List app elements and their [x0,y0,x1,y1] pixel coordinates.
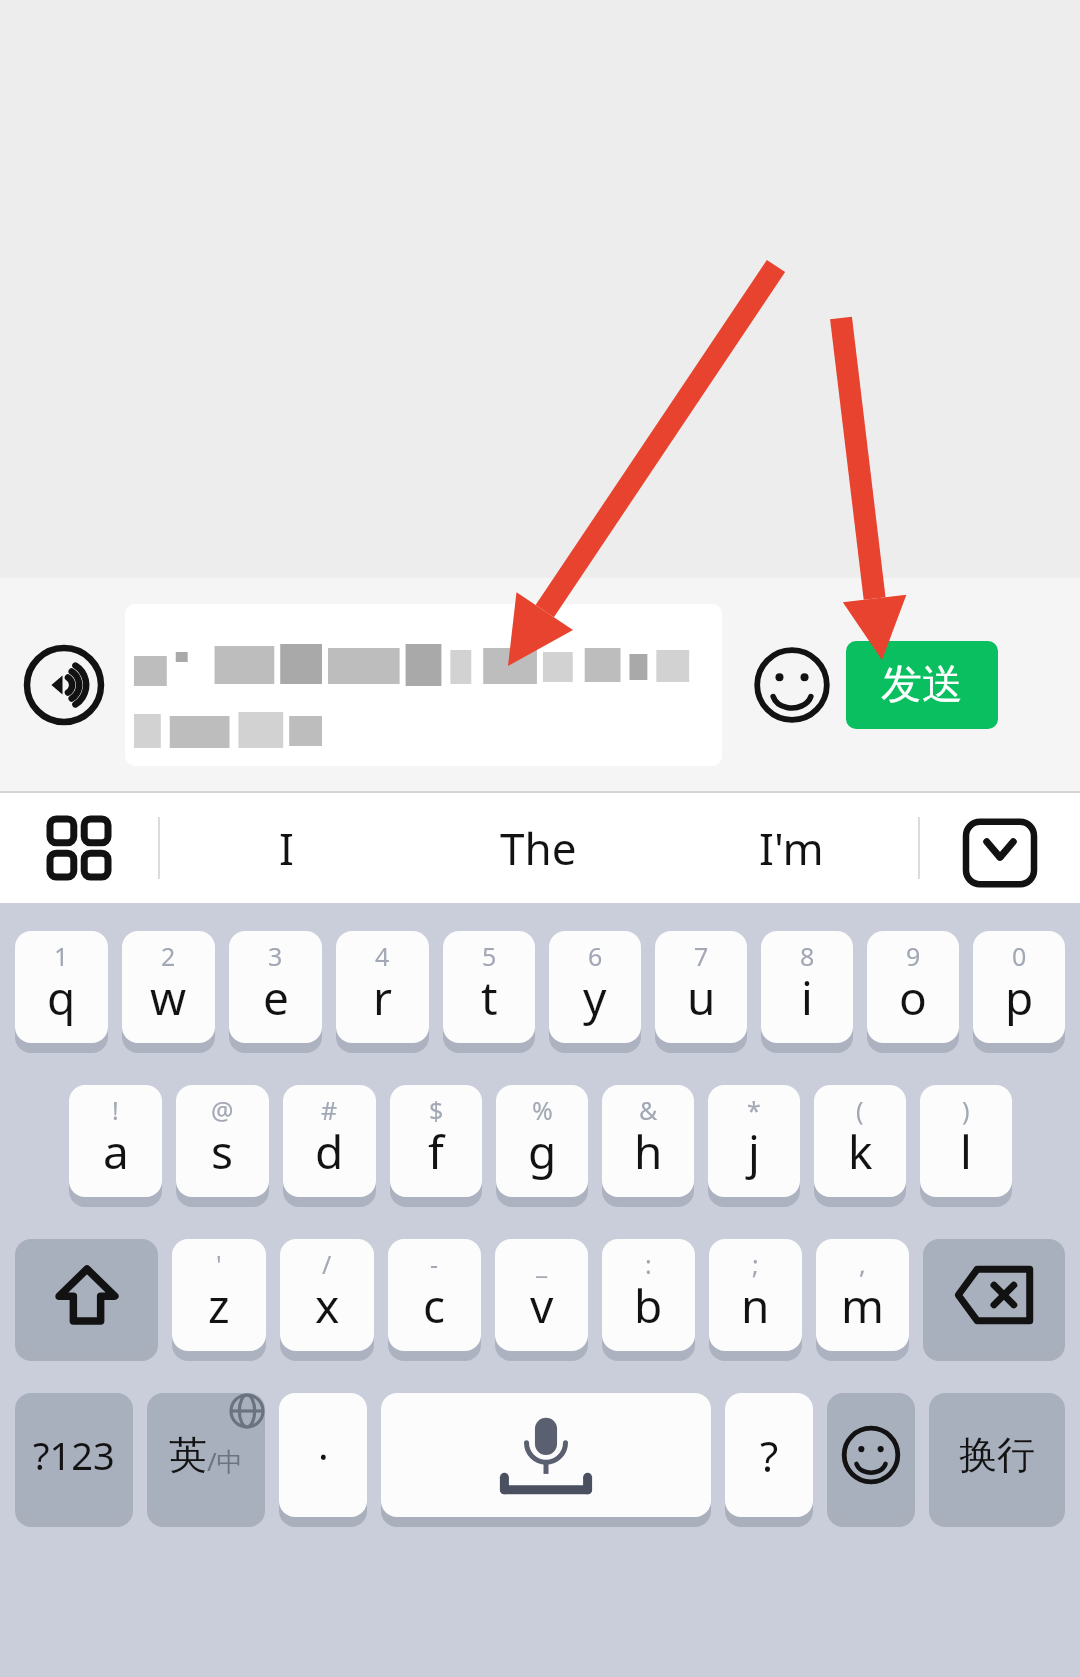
staticText: /中 [207,1443,243,1479]
button[interactable]: _ [495,1239,588,1357]
button[interactable]: ! [69,1085,162,1203]
button[interactable]: 3 [229,931,322,1049]
button[interactable]: 6 [549,931,641,1049]
button[interactable]: Voice input [14,635,114,735]
staticText: / [322,1247,332,1281]
staticText: ' [216,1247,222,1281]
staticText: 8 [800,939,815,973]
staticText: The [500,818,577,878]
button[interactable]: 发送 [846,641,998,729]
staticText: ? [760,1427,779,1484]
button[interactable]: 0 [973,931,1065,1049]
button[interactable]: # [283,1085,376,1203]
button[interactable]: ) [920,1085,1012,1203]
staticText: a [103,1120,129,1183]
staticText: 1 [54,939,69,973]
staticText: ( [856,1093,864,1127]
staticText: 7 [694,939,709,973]
staticText: x [315,1274,340,1337]
staticText: 9 [906,939,921,973]
button[interactable]: Emoji [746,639,838,731]
staticText: y [583,966,607,1029]
staticText: ; [752,1247,759,1281]
button[interactable]: 8 [761,931,853,1049]
staticText: o [899,966,927,1029]
staticText: , [859,1247,866,1281]
staticText: @ [211,1093,234,1127]
button[interactable]: 7 [655,931,747,1049]
button[interactable]: Backspace [923,1239,1065,1357]
button[interactable]: 9 [867,931,959,1049]
staticText: z [208,1274,230,1337]
button[interactable]: ?123 [15,1393,133,1523]
button[interactable]: 4 [336,931,429,1049]
staticText: 5 [482,939,497,973]
staticText: ) [962,1093,970,1127]
staticText: i [801,966,813,1029]
staticText: k [848,1120,873,1183]
button[interactable] [125,604,722,766]
staticText: e [263,966,289,1029]
staticText: p [1005,966,1034,1029]
button[interactable]: / [280,1239,374,1357]
button[interactable]: @ [176,1085,269,1203]
button[interactable]: - [388,1239,481,1357]
staticText: ! [112,1093,119,1127]
button[interactable]: Space [381,1393,711,1523]
button[interactable]: I [160,793,412,903]
staticText: 发送 [881,659,963,711]
staticText: * [747,1093,761,1127]
button[interactable]: 1 [15,931,108,1049]
staticText: v [530,1274,554,1337]
button[interactable]: · [279,1393,367,1523]
button[interactable]: & [602,1085,694,1203]
staticText: j [748,1120,760,1183]
staticText: I'm [759,818,824,878]
staticText: & [639,1093,658,1127]
staticText: $ [429,1093,444,1127]
button[interactable]: : [602,1239,695,1357]
staticText: 0 [1012,939,1027,973]
button[interactable]: 英 [147,1393,265,1523]
button[interactable]: ? [725,1393,813,1523]
staticText: f [428,1120,444,1183]
staticText: q [47,966,76,1029]
button[interactable]: 2 [122,931,215,1049]
staticText: ?123 [33,1429,115,1481]
staticText: 3 [268,939,283,973]
button[interactable]: % [496,1085,588,1203]
staticText: r [373,966,392,1029]
button[interactable]: ' [172,1239,266,1357]
button[interactable]: * [708,1085,800,1203]
button[interactable]: I'm [665,793,918,903]
staticText: b [634,1274,663,1337]
staticText: l [960,1120,972,1183]
button[interactable]: ( [814,1085,906,1203]
staticText: : [645,1247,652,1281]
staticText: _ [536,1247,548,1281]
staticText: % [532,1093,553,1127]
button[interactable]: ; [709,1239,802,1357]
staticText: # [321,1093,338,1127]
button[interactable]: The [412,793,665,903]
button[interactable]: , [816,1239,909,1357]
staticText: 2 [161,939,176,973]
staticText: d [315,1120,344,1183]
button[interactable]: 5 [443,931,535,1049]
staticText: c [423,1274,446,1337]
staticText: 英 [169,1431,207,1479]
staticText: 6 [588,939,603,973]
staticText: w [150,966,187,1029]
staticText: 换行 [959,1431,1035,1479]
button[interactable]: Hide keyboard [920,793,1080,903]
button[interactable]: 换行 [929,1393,1065,1523]
staticText: n [741,1274,770,1337]
button[interactable]: Emoji [827,1393,915,1523]
staticText: s [211,1120,234,1183]
staticText: - [430,1247,439,1281]
staticText: t [481,966,498,1029]
button[interactable] [15,1239,158,1357]
button[interactable]: $ [390,1085,482,1203]
button[interactable]: Keyboard menu [0,793,158,903]
staticText: 4 [375,939,390,973]
